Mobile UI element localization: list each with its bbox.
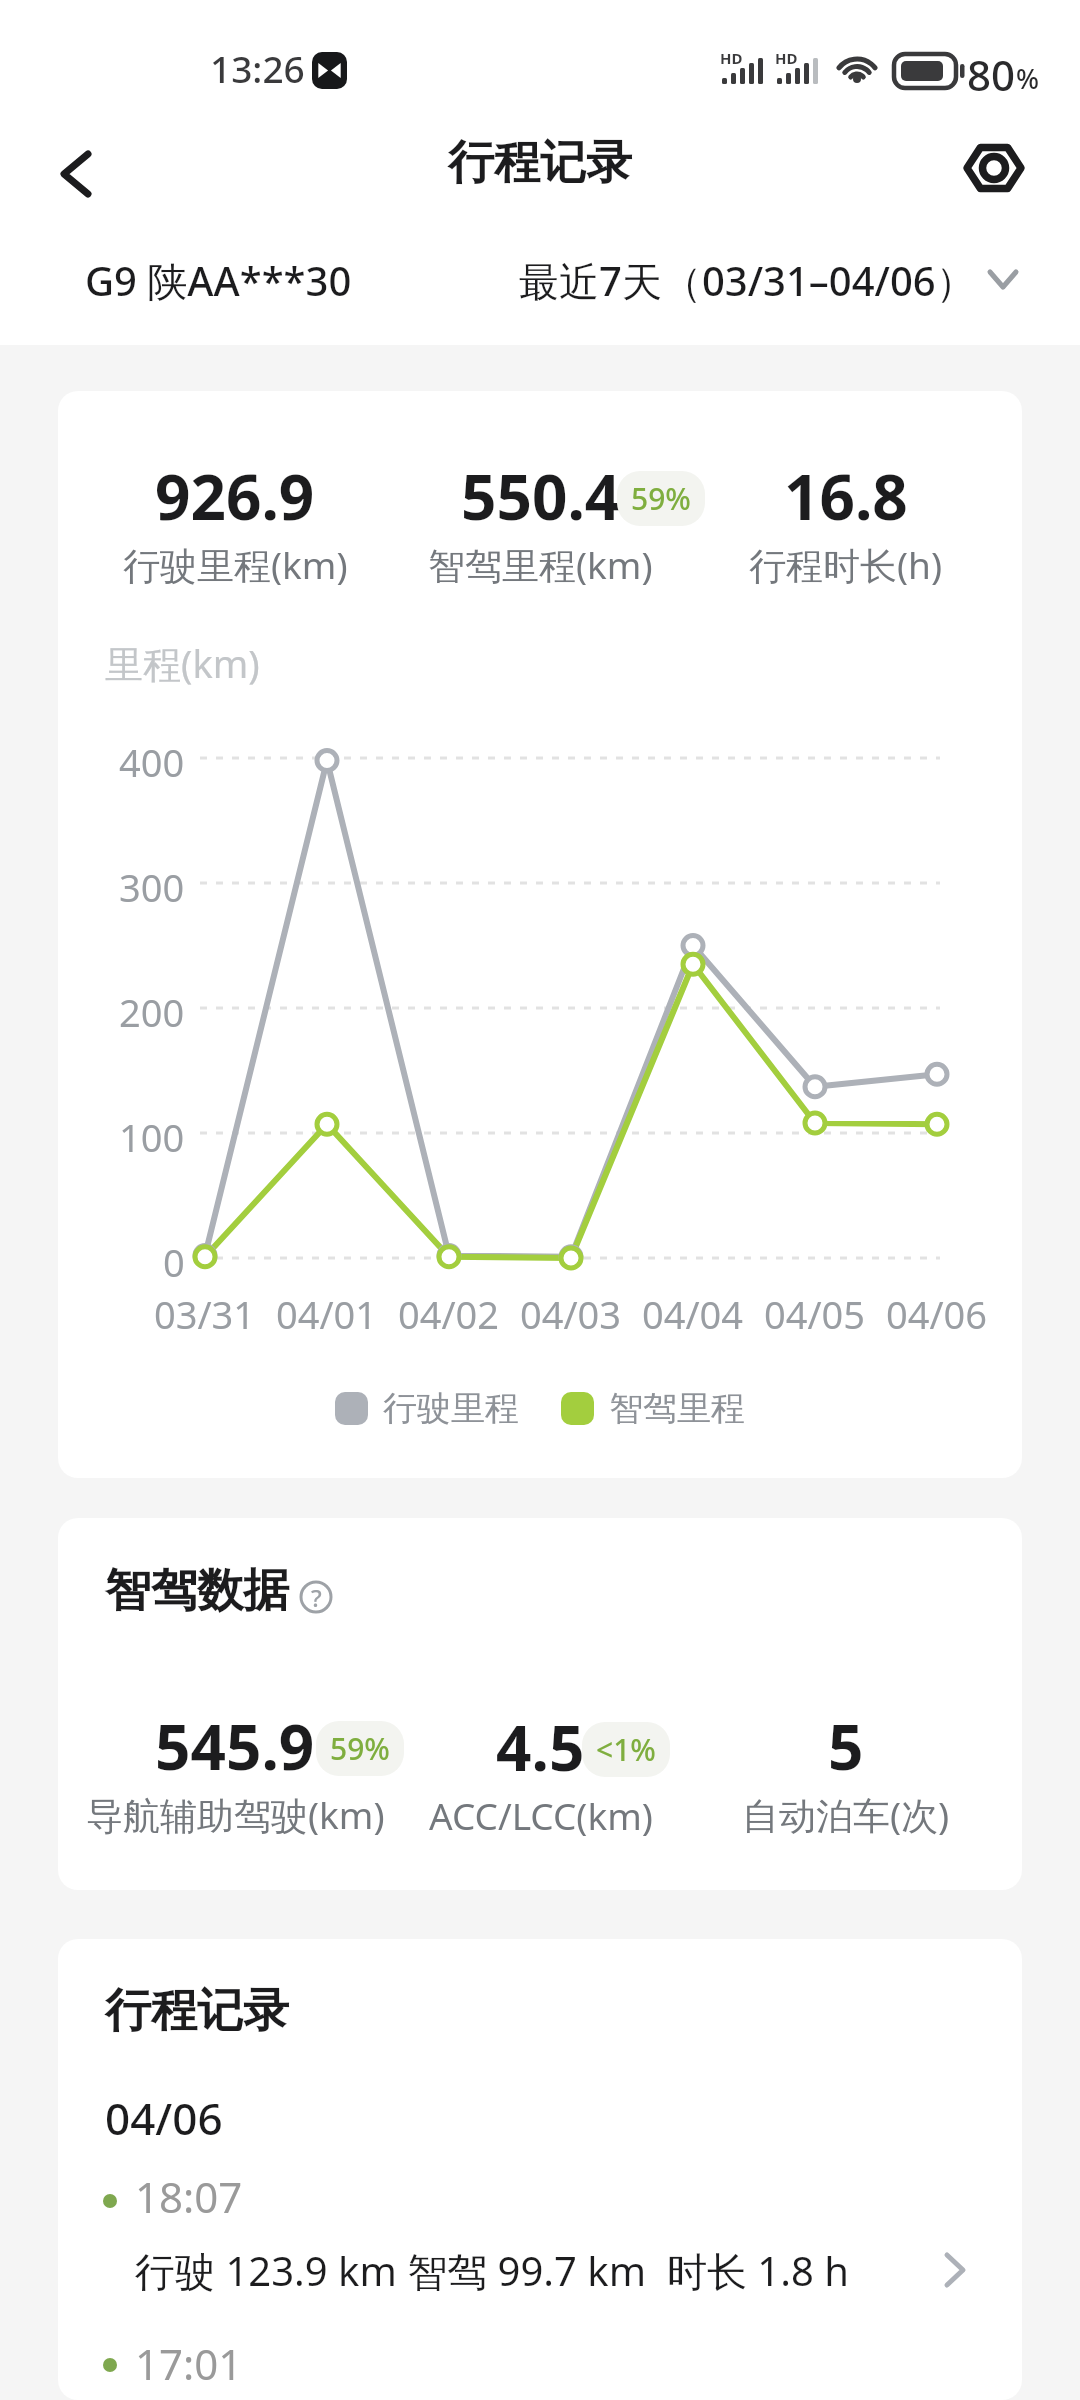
staticText: <1% — [596, 1729, 656, 1770]
staticText: 智驾数据 — [105, 1562, 289, 1620]
button[interactable]: 最近7天（03/31–04/06） — [519, 243, 1018, 317]
staticText: 智驾里程(km) — [428, 539, 653, 590]
staticText: HD — [775, 48, 798, 68]
staticText: 导航辅助驾驶(km) — [86, 1789, 385, 1840]
button[interactable] — [962, 136, 1026, 200]
staticText: G9 陕AA***30 — [85, 253, 352, 308]
staticText: 行程记录 — [105, 1982, 289, 2040]
staticText: 0 — [163, 1236, 185, 1280]
staticText: 59% — [631, 478, 691, 519]
staticText: 行程时长(h) — [749, 539, 943, 590]
staticText: 4.5 — [496, 1705, 585, 1789]
staticText: 200 — [119, 986, 185, 1030]
staticText: 04/06 — [105, 2088, 223, 2148]
staticText: 100 — [119, 1111, 185, 1155]
staticText: 04/02 — [398, 1288, 500, 1332]
button[interactable] — [48, 146, 104, 202]
staticText: 926.9 — [155, 454, 315, 538]
staticText: 545.9 — [155, 1704, 315, 1788]
staticText: 行程记录 — [448, 134, 632, 192]
staticText: 18:07 — [135, 2168, 243, 2225]
staticText: 13:26 — [210, 43, 305, 93]
staticText: 17:01 — [135, 2335, 243, 2392]
staticText: 自动泊车(次) — [742, 1789, 950, 1840]
staticText: 400 — [119, 736, 185, 780]
staticText: 03/31 — [154, 1288, 256, 1332]
staticText: 行驶里程(km) — [123, 539, 348, 590]
button[interactable]: G9 陕AA***30 — [60, 243, 352, 317]
staticText: 80 — [967, 46, 1016, 103]
staticText: 04/06 — [886, 1288, 988, 1332]
staticText: 16.8 — [784, 454, 908, 538]
staticText: 04/03 — [520, 1288, 622, 1332]
staticText: % — [1016, 60, 1040, 97]
button[interactable]: 行驶 123.9 km 智驾 99.7 km 时长 1.8 h — [135, 2235, 965, 2305]
staticText: 550.4 — [461, 454, 621, 538]
staticText: 最近7天（03/31–04/06） — [519, 253, 976, 308]
staticText: HD — [720, 48, 743, 68]
staticText: 300 — [119, 861, 185, 905]
staticText: 59% — [330, 1728, 390, 1769]
staticText: 智驾里程 — [609, 1387, 745, 1430]
staticText: 行驶 123.9 km 智驾 99.7 km 时长 1.8 h — [135, 2243, 849, 2298]
staticText: 行驶里程 — [383, 1387, 519, 1430]
staticText: 04/05 — [764, 1288, 866, 1332]
staticText: 04/01 — [276, 1288, 378, 1332]
staticText: 5 — [828, 1704, 864, 1788]
staticText: 里程(km) — [105, 637, 260, 689]
staticText: ACC/LCC(km) — [429, 1790, 653, 1840]
staticText: 04/04 — [642, 1288, 744, 1332]
staticText: ? — [311, 1581, 322, 1614]
